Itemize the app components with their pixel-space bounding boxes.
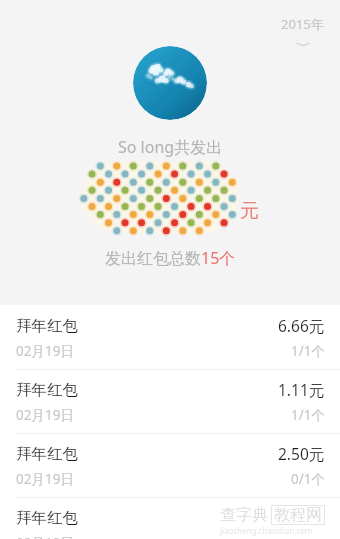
staticText: 02月19日 bbox=[16, 406, 74, 424]
staticText: So long共发出 bbox=[118, 136, 223, 158]
button[interactable]: 拜年红包 bbox=[0, 434, 340, 497]
button[interactable]: 2015年 bbox=[273, 9, 332, 54]
staticText: 6.66元 bbox=[278, 315, 325, 336]
button[interactable]: 拜年红包 bbox=[0, 306, 340, 369]
staticText: 02月19日 bbox=[16, 342, 74, 360]
staticText: jiaocheng.chazidian.com bbox=[220, 525, 313, 536]
staticText: 元 bbox=[240, 199, 259, 223]
staticText: 02月19日 bbox=[16, 534, 74, 539]
staticText: 查字典 bbox=[220, 505, 268, 525]
button[interactable]: 拜年红包 bbox=[0, 370, 340, 433]
staticText: 拜年红包 bbox=[16, 380, 78, 400]
staticText: 02月19日 bbox=[16, 470, 74, 488]
staticText: 2.50元 bbox=[278, 443, 325, 464]
staticText: 教程网 bbox=[274, 505, 322, 525]
staticText: 拜年红包 bbox=[16, 316, 78, 336]
staticText: 0/1个 bbox=[291, 470, 325, 488]
staticText: 1/1个 bbox=[291, 342, 325, 360]
staticText: 拜年红包 bbox=[16, 508, 78, 528]
button[interactable]: Profile avatar bbox=[133, 46, 207, 120]
staticText: 发出红包总数 bbox=[105, 249, 201, 269]
staticText: 1/1个 bbox=[291, 406, 325, 424]
button[interactable]: 拜年红包 bbox=[0, 498, 340, 539]
staticText: 1.11元 bbox=[278, 379, 325, 400]
staticText: 2015年 bbox=[281, 15, 324, 33]
staticText: 拜年红包 bbox=[16, 444, 78, 464]
staticText: 15个 bbox=[201, 247, 236, 269]
